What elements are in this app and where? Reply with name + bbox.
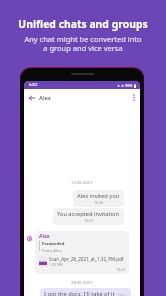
button[interactable]: I got the docs. I'll take of it (40, 288, 131, 296)
staticText: Scan_Apr_26_2021_at_1.32_PM.pdf (49, 256, 124, 262)
staticText: 13.05.2021 (71, 180, 93, 186)
staticText: 6:52 (29, 82, 38, 88)
staticText: Unified chats and groups (18, 17, 148, 31)
staticText: 10:47 (84, 218, 94, 223)
button[interactable]: Back (27, 93, 36, 102)
button[interactable]: Alex (35, 231, 129, 274)
staticText: Alex (39, 233, 50, 240)
staticText: 10:46 (94, 200, 104, 205)
staticText: Alex (39, 94, 52, 102)
button[interactable]: Alex invited you (73, 190, 124, 207)
staticText: Alex invited you (77, 192, 120, 200)
staticText: 95% (125, 83, 133, 88)
staticText: 17:51 (117, 293, 127, 296)
staticText: Forwarded (42, 241, 65, 247)
staticText: From Alex (42, 248, 62, 254)
button[interactable]: Back (24, 89, 140, 106)
staticText: I got the docs. I'll take of it (44, 290, 115, 296)
staticText: 28.05.2021 (71, 280, 93, 286)
button[interactable]: You accepted invitation (53, 208, 124, 225)
staticText: 10:47 (116, 267, 126, 272)
staticText: 1.03 MB (49, 262, 63, 267)
staticText: You accepted invitation (57, 210, 120, 218)
staticText: Any chat might be converted into a group… (24, 34, 142, 53)
button[interactable]: More options (129, 93, 138, 102)
